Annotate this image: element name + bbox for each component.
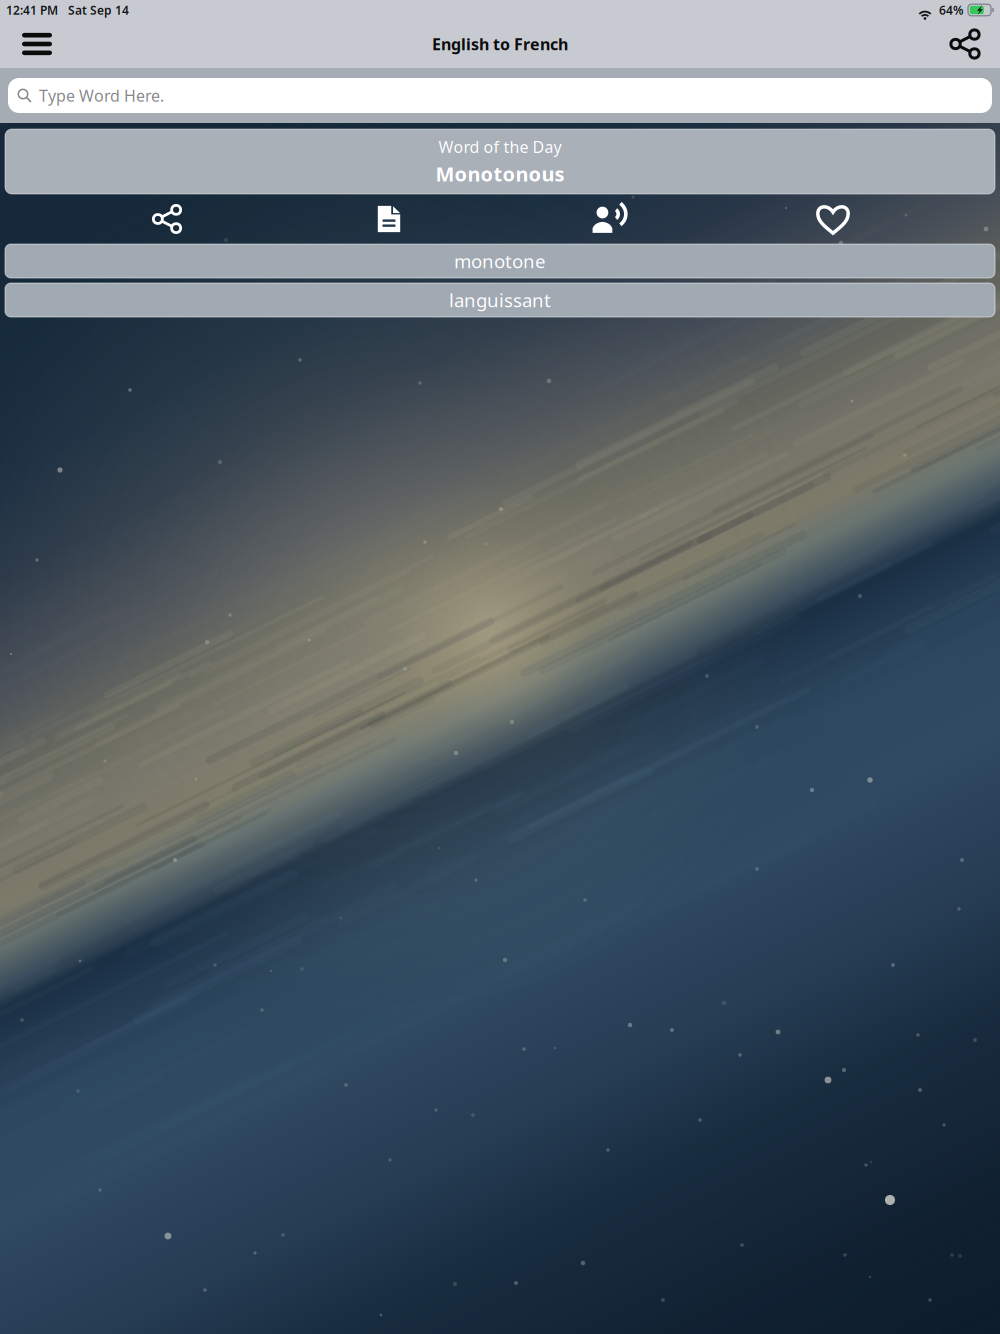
button[interactable]: Pronounce [500, 194, 722, 244]
staticText: Monotonous [435, 160, 564, 187]
staticText: Sat Sep 14 [68, 2, 129, 18]
button[interactable]: monotone [5, 244, 995, 278]
staticText: monotone [454, 249, 546, 273]
button[interactable]: Share word [56, 194, 278, 244]
staticText: 12:41 PM [6, 2, 58, 18]
button[interactable]: languissant [5, 283, 995, 317]
button[interactable]: Definition [278, 194, 500, 244]
button[interactable]: Type Word Here. [8, 78, 992, 113]
button[interactable]: Share [930, 20, 1000, 68]
button[interactable]: Favorite [722, 194, 944, 244]
staticText: Type Word Here. [39, 85, 164, 106]
staticText: 64% [939, 2, 964, 18]
staticText: languissant [449, 288, 551, 312]
button[interactable]: Menu [0, 21, 74, 67]
staticText: Word of the Day [438, 136, 561, 157]
staticText: English to French [432, 33, 568, 55]
button[interactable]: Word of the Day [5, 129, 995, 194]
